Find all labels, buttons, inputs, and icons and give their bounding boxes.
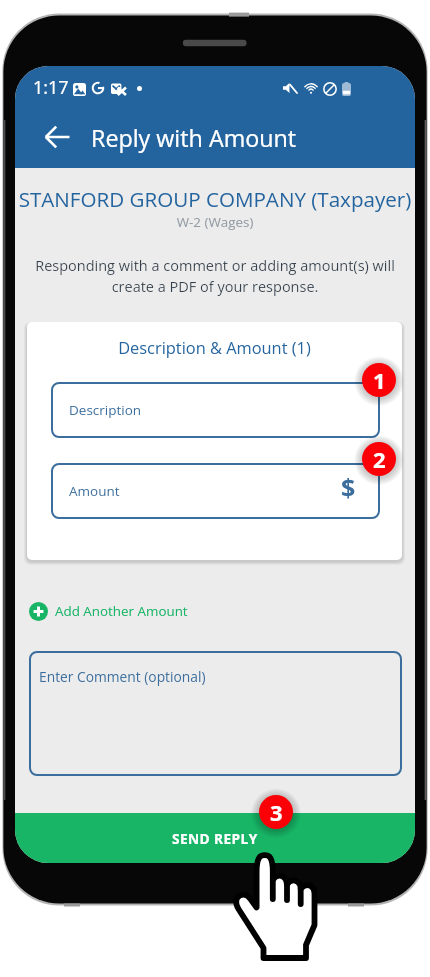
button[interactable]: Add Another Amount [29, 601, 188, 621]
staticText: Reply with Amount [91, 122, 297, 154]
staticText: $ [341, 470, 356, 504]
staticText: W-2 (Wages) [15, 213, 415, 231]
button[interactable]: SEND REPLY [15, 813, 415, 863]
staticText: 1 [373, 365, 386, 395]
staticText: Enter Comment (optional) [39, 667, 206, 686]
staticText: Description [69, 401, 142, 419]
staticText: 1:17 [33, 75, 69, 100]
staticText: Description & Amount (1) [27, 336, 402, 358]
staticText: Responding with a comment or adding amou… [33, 256, 397, 296]
staticText: 3 [270, 797, 283, 827]
staticText: Add Another Amount [55, 602, 188, 620]
staticText: Amount [69, 482, 120, 500]
button[interactable]: Enter Comment (optional) [29, 651, 402, 776]
button[interactable]: Back [33, 113, 81, 161]
staticText: 2 [373, 444, 386, 474]
button[interactable]: Description [51, 382, 380, 438]
button[interactable]: Amount [51, 463, 380, 519]
staticText: STANFORD GROUP COMPANY (Taxpayer) [15, 185, 415, 213]
staticText: SEND REPLY [172, 829, 258, 848]
